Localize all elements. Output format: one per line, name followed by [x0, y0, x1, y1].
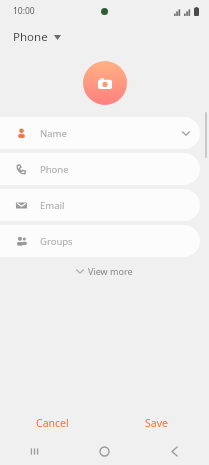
button[interactable]: Back — [139, 438, 209, 465]
staticText: Cancel — [36, 416, 69, 430]
staticText: Save — [145, 416, 168, 430]
button[interactable]: Recent apps — [0, 438, 69, 465]
staticText: Email — [40, 199, 65, 212]
staticText: View more — [88, 265, 133, 277]
button[interactable]: Home — [69, 438, 139, 465]
button[interactable]: Groups — [0, 225, 200, 257]
staticText: 10:00 — [13, 5, 35, 17]
button[interactable]: View more — [0, 257, 209, 285]
staticText: Phone — [40, 163, 69, 176]
button[interactable]: Email — [0, 189, 200, 221]
staticText: Groups — [40, 235, 73, 248]
button[interactable]: Add photo — [83, 61, 127, 105]
button[interactable]: Phone — [0, 153, 200, 185]
button[interactable]: Cancel — [0, 408, 104, 438]
button[interactable]: Name — [0, 117, 200, 149]
button[interactable]: Phone — [0, 22, 209, 52]
button[interactable]: Save — [104, 408, 209, 438]
staticText: Phone — [13, 29, 48, 45]
staticText: Name — [40, 127, 67, 140]
